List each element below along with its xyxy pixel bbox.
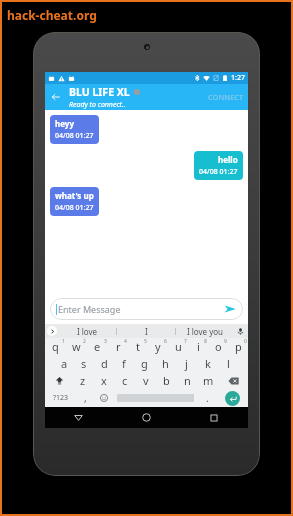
- staticText: c: [122, 373, 128, 388]
- staticText: hello: [218, 154, 238, 165]
- button[interactable]: I love: [59, 324, 116, 338]
- button[interactable]: p: [228, 338, 248, 355]
- button[interactable]: Voice input: [235, 326, 245, 336]
- staticText: j: [185, 356, 188, 371]
- button[interactable]: hello: [194, 151, 243, 180]
- button[interactable]: Enter: [225, 391, 240, 406]
- button[interactable]: what's up: [50, 187, 99, 216]
- staticText: 8: [204, 338, 207, 345]
- button[interactable]: Back: [47, 88, 65, 106]
- button[interactable]: q: [45, 338, 66, 355]
- button[interactable]: Expand: [47, 326, 57, 336]
- button[interactable]: Back: [45, 407, 112, 428]
- staticText: l: [227, 356, 230, 371]
- button[interactable]: ?123: [45, 389, 76, 407]
- button[interactable]: I love you: [176, 324, 234, 338]
- button[interactable]: d: [94, 355, 114, 372]
- button[interactable]: j: [176, 355, 197, 372]
- button[interactable]: m: [198, 372, 219, 389]
- staticText: u: [175, 339, 182, 354]
- staticText: d: [101, 356, 108, 371]
- button[interactable]: ,: [76, 389, 95, 407]
- button[interactable]: x: [93, 372, 114, 389]
- staticText: v: [143, 373, 149, 388]
- staticText: 5: [144, 338, 147, 345]
- button[interactable]: .: [198, 389, 216, 407]
- staticText: what's up: [55, 190, 94, 201]
- staticText: hack-cheat.org: [7, 7, 97, 23]
- staticText: r: [116, 339, 121, 354]
- button[interactable]: heyy: [50, 115, 99, 144]
- button[interactable]: e: [87, 338, 108, 355]
- staticText: ?123: [53, 393, 69, 403]
- staticText: ,: [84, 391, 87, 405]
- button[interactable]: a: [54, 355, 74, 372]
- button[interactable]: z: [73, 372, 93, 389]
- button[interactable]: Backspace: [219, 372, 248, 389]
- button[interactable]: i: [188, 338, 208, 355]
- button[interactable]: k: [197, 355, 218, 372]
- staticText: x: [101, 373, 107, 388]
- staticText: 1:27: [231, 73, 245, 83]
- staticText: 4: [124, 338, 127, 345]
- button[interactable]: l: [218, 355, 239, 372]
- button[interactable]: Enter Message: [50, 298, 243, 320]
- staticText: 6: [164, 338, 167, 345]
- staticText: h: [162, 356, 169, 371]
- staticText: Enter Message: [58, 303, 121, 315]
- button[interactable]: v: [135, 372, 156, 389]
- button[interactable]: w: [66, 338, 87, 355]
- staticText: e: [94, 339, 101, 354]
- staticText: 1: [62, 338, 65, 345]
- staticText: o: [215, 339, 222, 354]
- staticText: 9: [224, 338, 227, 345]
- button[interactable]: o: [208, 338, 228, 355]
- button[interactable]: CONNECT: [208, 92, 244, 102]
- staticText: p: [235, 339, 242, 354]
- button[interactable]: t: [128, 338, 148, 355]
- staticText: y: [155, 339, 161, 354]
- button[interactable]: n: [177, 372, 198, 389]
- staticText: 04/08 01:27: [199, 167, 238, 177]
- staticText: s: [81, 356, 87, 371]
- button[interactable]: Shift: [45, 372, 73, 389]
- button[interactable]: Emoji: [95, 389, 113, 407]
- staticText: g: [141, 356, 148, 371]
- staticText: b: [163, 373, 170, 388]
- button[interactable]: r: [108, 338, 128, 355]
- button[interactable]: h: [155, 355, 176, 372]
- staticText: f: [122, 356, 126, 371]
- button[interactable]: Send: [223, 302, 237, 316]
- button[interactable]: Recents: [180, 407, 248, 428]
- button[interactable]: Home: [112, 407, 180, 428]
- staticText: I: [145, 326, 148, 337]
- staticText: I love you: [187, 326, 224, 337]
- staticText: k: [205, 356, 211, 371]
- staticText: .: [206, 391, 209, 405]
- button[interactable]: f: [114, 355, 134, 372]
- button[interactable]: b: [156, 372, 177, 389]
- staticText: 7: [184, 338, 187, 345]
- staticText: heyy: [55, 118, 74, 129]
- staticText: i: [197, 339, 200, 354]
- staticText: q: [52, 339, 59, 354]
- staticText: Ready to connect..: [69, 100, 126, 110]
- button[interactable]: g: [134, 355, 155, 372]
- staticText: 04/08 01:27: [55, 203, 94, 213]
- staticText: n: [184, 373, 191, 388]
- button[interactable]: u: [168, 338, 188, 355]
- staticText: z: [80, 373, 86, 388]
- staticText: m: [203, 373, 214, 388]
- button[interactable]: c: [114, 372, 135, 389]
- staticText: t: [136, 339, 140, 354]
- staticText: 04/08 01:27: [55, 131, 94, 141]
- staticText: w: [72, 339, 81, 354]
- button[interactable]: y: [148, 338, 168, 355]
- staticText: 3: [104, 338, 107, 345]
- staticText: 0: [244, 338, 247, 345]
- staticText: a: [61, 356, 68, 371]
- staticText: 2: [83, 338, 86, 345]
- button[interactable]: I: [117, 324, 175, 338]
- button[interactable]: s: [74, 355, 94, 372]
